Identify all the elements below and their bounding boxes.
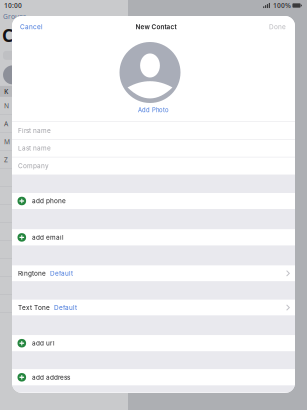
staticText: Ringtone (18, 269, 46, 277)
button[interactable]: add email (12, 229, 295, 245)
staticText: First name (18, 127, 51, 134)
staticText: A (4, 119, 8, 128)
button[interactable]: Last name (12, 139, 295, 157)
staticText: New Contact (135, 23, 176, 31)
staticText: add address (32, 373, 70, 381)
button[interactable]: Done (269, 23, 286, 31)
button[interactable]: add url (12, 335, 295, 351)
staticText: Done (269, 23, 286, 31)
staticText: add url (32, 339, 55, 347)
button[interactable]: First name (12, 121, 295, 139)
button[interactable]: add phone (12, 193, 295, 209)
button[interactable]: Ringtone (12, 266, 295, 281)
button[interactable]: Company (12, 157, 295, 174)
staticText: K (4, 87, 8, 96)
staticText: add phone (32, 197, 66, 205)
staticText: N (4, 101, 9, 110)
staticText: Groups (3, 12, 26, 21)
staticText: Text Tone (18, 304, 50, 311)
staticText: Add Photo (138, 106, 169, 114)
button[interactable]: add address (12, 369, 295, 385)
staticText: add email (32, 233, 64, 241)
button[interactable]: Text Tone (12, 300, 295, 315)
staticText: Z (4, 155, 8, 164)
staticText: Contacts (2, 24, 79, 47)
button[interactable]: Contact photo (119, 42, 180, 103)
staticText: Last name (18, 144, 51, 152)
staticText: Company (18, 162, 49, 170)
staticText: Default (50, 269, 73, 277)
staticText: Cancel (20, 23, 43, 31)
button[interactable]: Add Photo (138, 105, 169, 115)
staticText: Default (54, 304, 77, 311)
button[interactable]: Cancel (20, 23, 43, 31)
staticText: M (4, 137, 10, 146)
staticText: 100% (273, 1, 291, 10)
staticText: 10:00 (4, 1, 22, 10)
